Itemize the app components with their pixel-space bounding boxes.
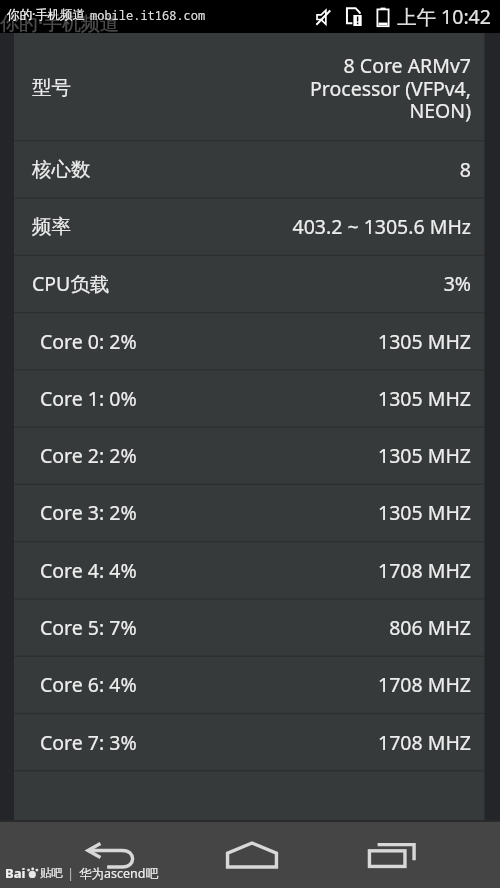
staticText: 你的·手机频道 xyxy=(7,6,86,23)
staticText: Core 6: 4% xyxy=(40,671,137,698)
button[interactable]: Back xyxy=(61,822,161,888)
staticText: 1305 MHZ xyxy=(271,442,471,469)
button[interactable]: Core 5: 7% xyxy=(14,599,486,656)
staticText: 上午 10:42 xyxy=(397,3,491,30)
staticText: 型号 xyxy=(32,75,71,100)
staticText: 1708 MHZ xyxy=(271,729,471,756)
staticText: 1305 MHZ xyxy=(271,328,471,355)
button[interactable]: CPU负载 xyxy=(14,255,486,312)
button[interactable]: Core 3: 2% xyxy=(14,484,486,541)
button[interactable]: Core 2: 2% xyxy=(14,427,486,484)
staticText: Core 0: 2% xyxy=(40,328,137,355)
staticText: | xyxy=(67,864,75,882)
button[interactable]: Core 7: 3% xyxy=(14,714,486,771)
button[interactable]: Core 4: 4% xyxy=(14,542,486,599)
button[interactable]: Core 1: 0% xyxy=(14,370,486,427)
staticText: CPU负载 xyxy=(32,270,110,297)
staticText: Bai xyxy=(5,864,26,882)
staticText: 1708 MHZ xyxy=(271,557,471,584)
button[interactable]: Recents xyxy=(342,822,442,888)
button[interactable]: Core 6: 4% xyxy=(14,656,486,713)
staticText: 806 MHZ xyxy=(271,614,471,641)
button[interactable]: 型号 xyxy=(14,33,486,141)
staticText: 华为ascend吧 xyxy=(79,865,158,882)
staticText: Core 3: 2% xyxy=(40,499,137,526)
button[interactable]: 频率 xyxy=(14,198,486,255)
staticText: 8 xyxy=(271,156,471,183)
staticText: 核心数 xyxy=(32,157,91,182)
staticText: Core 7: 3% xyxy=(40,729,137,756)
button[interactable]: Home xyxy=(202,822,302,888)
staticText: 1708 MHZ xyxy=(271,671,471,698)
staticText: Core 1: 0% xyxy=(40,385,137,412)
button[interactable]: 核心数 xyxy=(14,141,486,198)
staticText: Core 4: 4% xyxy=(40,557,137,584)
button[interactable]: Core 0: 2% xyxy=(14,313,486,370)
staticText: 你的·手机频道 xyxy=(0,10,120,36)
staticText: 3% xyxy=(271,270,471,297)
staticText: 403.2 ~ 1305.6 MHz xyxy=(271,213,471,240)
staticText: 1305 MHZ xyxy=(271,385,471,412)
staticText: mobile.it168.com xyxy=(90,7,206,23)
staticText: 8 Core ARMv7 Processor (VFPv4, NEON) xyxy=(296,52,471,123)
staticText: Core 2: 2% xyxy=(40,442,137,469)
staticText: 频率 xyxy=(32,214,71,239)
staticText: 贴吧 xyxy=(40,866,63,880)
staticText: 1305 MHZ xyxy=(271,499,471,526)
staticText: Core 5: 7% xyxy=(40,614,137,641)
